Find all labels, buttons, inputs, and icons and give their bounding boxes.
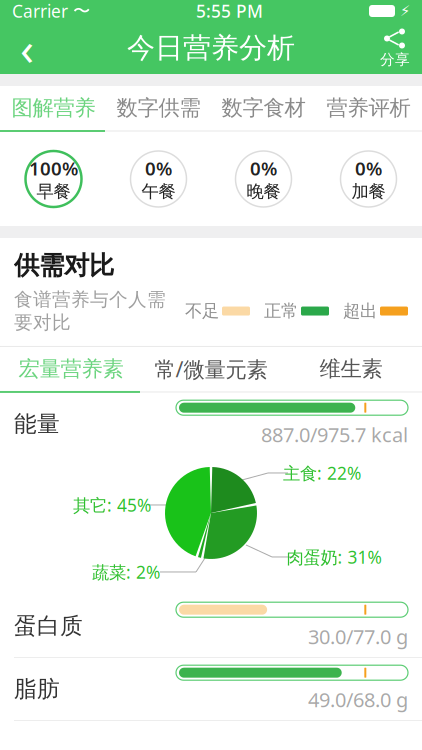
staticText: 图解营养 (11, 95, 95, 121)
staticText: 超出 (343, 300, 377, 322)
staticText: 30.0/77.0 g (308, 623, 408, 650)
button[interactable]: 数字供需 (106, 86, 211, 130)
staticText: 食谱营养与个人需要对比 (14, 288, 166, 334)
staticText: 0% (250, 156, 277, 181)
staticText: 主食: 22% (283, 461, 361, 484)
staticText: ‹ (20, 18, 34, 78)
staticText: 午餐 (141, 181, 175, 202)
button[interactable]: 0% (211, 132, 316, 226)
staticText: 其它: 45% (73, 493, 151, 516)
staticText: ⚡︎ (395, 3, 410, 19)
staticText: 数字供需 (116, 95, 200, 121)
staticText: 维生素 (319, 356, 382, 382)
button[interactable]: 100% (1, 132, 106, 226)
staticText: 脂肪 (14, 675, 60, 703)
staticText: 〜 (68, 0, 90, 22)
staticText: 宏量营养素 (18, 356, 123, 382)
staticText: 常/微量元素 (154, 355, 267, 383)
staticText: 正常 (264, 300, 298, 322)
staticText: 加餐 (351, 181, 385, 202)
staticText: 肉蛋奶: 31% (286, 545, 381, 568)
staticText: Carrier (12, 0, 68, 22)
staticText: 100% (29, 156, 78, 181)
staticText: 数字食材 (221, 95, 305, 121)
staticText: 887.0/975.7 kcal (261, 421, 408, 448)
staticText: 49.0/68.0 g (308, 686, 408, 713)
button[interactable]: 分享 (368, 22, 422, 74)
staticText: 0% (145, 156, 172, 181)
button[interactable]: 0% (106, 132, 211, 226)
staticText: 能量 (14, 410, 60, 438)
staticText: 营养评析 (326, 95, 410, 121)
button[interactable]: 常/微量元素 (141, 347, 281, 391)
button[interactable]: 营养评析 (316, 86, 421, 130)
button[interactable]: 图解营养 (1, 86, 106, 130)
staticText: 今日营养分析 (127, 31, 295, 65)
button[interactable]: 维生素 (281, 347, 421, 391)
staticText: 分享 (380, 50, 410, 68)
staticText: 5:55 PM (196, 0, 263, 22)
staticText: 不足 (185, 300, 219, 322)
button[interactable]: 数字食材 (211, 86, 316, 130)
button[interactable]: 0% (316, 132, 421, 226)
button[interactable]: Back (0, 22, 54, 74)
staticText: 0% (355, 156, 382, 181)
staticText: 供需对比 (14, 250, 114, 281)
button[interactable]: 宏量营养素 (1, 347, 141, 391)
staticText: 蛋白质 (14, 612, 83, 640)
staticText: 早餐 (36, 181, 70, 202)
staticText: 蔬菜: 2% (92, 560, 160, 583)
staticText: 晚餐 (246, 181, 280, 202)
